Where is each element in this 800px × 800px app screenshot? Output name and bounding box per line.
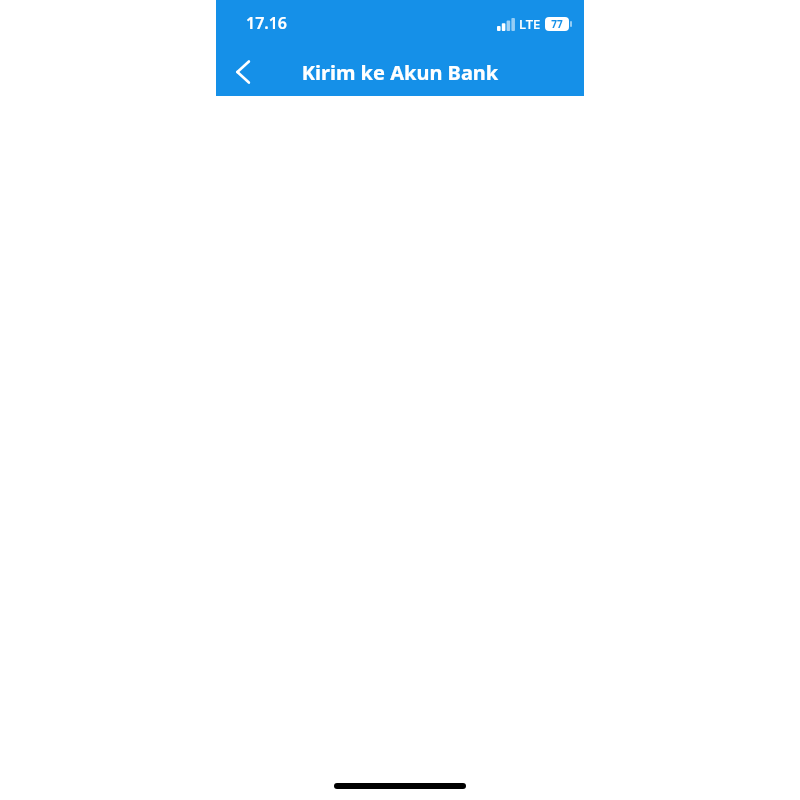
staticText: 17.16	[246, 12, 288, 34]
staticText: Kirim ke Akun Bank	[216, 59, 584, 86]
button[interactable]: Back	[221, 50, 265, 94]
staticText: 77	[551, 17, 563, 31]
staticText: LTE	[519, 15, 541, 33]
